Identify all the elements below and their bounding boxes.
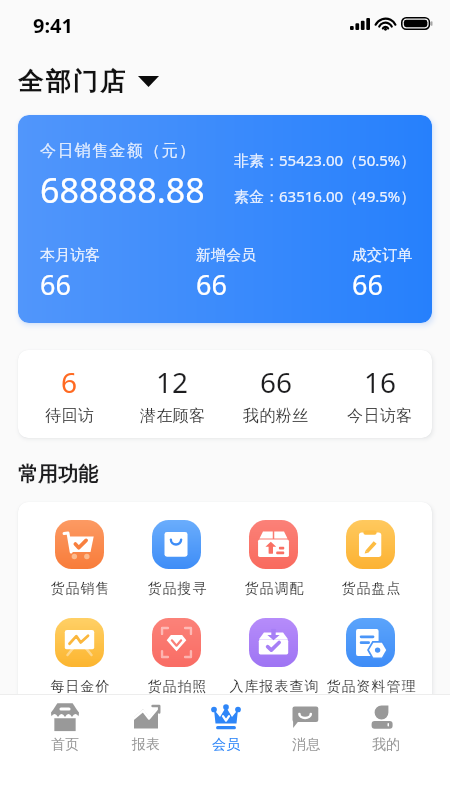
- button[interactable]: 报表: [105, 695, 186, 757]
- staticText: 消息: [292, 736, 320, 754]
- staticText: 本月访客: [40, 246, 100, 265]
- staticText: 货品资料管理: [326, 678, 416, 696]
- button[interactable]: 全部门店: [18, 66, 159, 97]
- button[interactable]: 入库报表查询: [225, 618, 322, 696]
- button[interactable]: 66: [224, 350, 328, 438]
- staticText: 常用功能: [18, 462, 98, 487]
- staticText: 我的粉丝: [243, 406, 309, 426]
- staticText: 16: [364, 363, 397, 401]
- button[interactable]: 12: [121, 350, 224, 438]
- staticText: 6: [61, 363, 78, 401]
- button[interactable]: 本月访客: [40, 246, 100, 303]
- button[interactable]: 6: [18, 350, 121, 438]
- staticText: 首页: [51, 736, 79, 754]
- staticText: 12: [156, 363, 189, 401]
- staticText: 货品销售: [50, 580, 110, 598]
- staticText: 货品盘点: [341, 580, 401, 598]
- staticText: 66: [260, 363, 293, 401]
- staticText: 66: [40, 266, 71, 303]
- staticText: 新增会员: [196, 246, 256, 265]
- button[interactable]: 货品搜寻: [128, 520, 225, 598]
- button[interactable]: 货品调配: [225, 520, 322, 598]
- staticText: 会员: [212, 736, 240, 754]
- button[interactable]: 今日销售金额（元）: [18, 115, 432, 323]
- staticText: 我的: [372, 736, 400, 754]
- staticText: 全部门店: [18, 66, 128, 97]
- staticText: 非素：55423.00（50.5%）: [234, 150, 416, 170]
- button[interactable]: 货品拍照: [128, 618, 225, 696]
- button[interactable]: 我的: [346, 695, 426, 757]
- button[interactable]: 消息: [266, 695, 346, 757]
- button[interactable]: 成交订单: [352, 246, 412, 303]
- staticText: 成交订单: [352, 246, 412, 265]
- staticText: 报表: [132, 736, 160, 754]
- staticText: 货品搜寻: [147, 580, 207, 598]
- staticText: 688888.88: [40, 167, 205, 213]
- staticText: 今日访客: [347, 406, 413, 426]
- button[interactable]: 每日金价: [31, 618, 128, 696]
- button[interactable]: 首页: [24, 695, 105, 757]
- staticText: 货品调配: [244, 580, 304, 598]
- staticText: 入库报表查询: [229, 678, 319, 696]
- staticText: 今日销售金额（元）: [40, 141, 197, 161]
- button[interactable]: 货品盘点: [322, 520, 419, 598]
- staticText: 9:41: [33, 12, 73, 39]
- staticText: 潜在顾客: [140, 406, 206, 426]
- staticText: 66: [196, 266, 227, 303]
- button[interactable]: 16: [328, 350, 432, 438]
- button[interactable]: 新增会员: [196, 246, 256, 303]
- staticText: 待回访: [45, 406, 95, 426]
- button[interactable]: 会员: [186, 695, 266, 757]
- button[interactable]: 货品销售: [31, 520, 128, 598]
- staticText: 素金：63516.00（49.5%）: [234, 186, 416, 206]
- staticText: 货品拍照: [147, 678, 207, 696]
- staticText: 每日金价: [50, 678, 110, 696]
- button[interactable]: 货品资料管理: [322, 618, 419, 696]
- staticText: 66: [352, 266, 383, 303]
